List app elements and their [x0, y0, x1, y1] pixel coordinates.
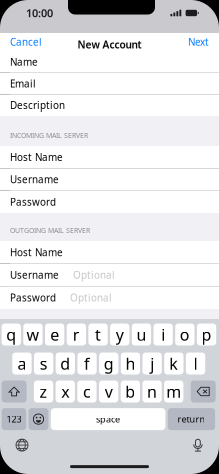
button[interactable]: n	[142, 380, 162, 402]
staticText: Host Name	[10, 246, 63, 259]
staticText: h	[125, 353, 135, 374]
button[interactable]: p	[197, 323, 216, 345]
button[interactable]: r	[67, 323, 86, 345]
staticText: j	[150, 353, 154, 374]
staticText: l	[194, 353, 198, 374]
button[interactable]: Cancel	[0, 33, 48, 51]
staticText: w	[26, 324, 39, 345]
button[interactable]: k	[164, 352, 183, 374]
staticText: INCOMING MAIL SERVER	[10, 131, 88, 140]
staticText: s	[40, 353, 48, 374]
staticText: 10:00	[26, 6, 53, 20]
staticText: f	[84, 353, 90, 374]
staticText: 123	[6, 413, 21, 425]
button[interactable]: b	[121, 380, 140, 402]
staticText: Optional	[70, 291, 112, 304]
button[interactable]: w	[23, 323, 43, 345]
staticText: OUTGOING MAIL SERVER	[10, 226, 90, 235]
staticText: m	[166, 381, 181, 402]
staticText: a	[17, 353, 26, 374]
button[interactable]: space	[51, 408, 165, 430]
button[interactable]: c	[77, 380, 97, 402]
button[interactable]: Dictate	[192, 438, 219, 452]
button[interactable]: Email	[0, 73, 219, 94]
staticText: Name	[10, 55, 38, 68]
button[interactable]: m	[164, 380, 183, 402]
button[interactable]: l	[186, 352, 205, 374]
button[interactable]: Numbers	[2, 408, 26, 430]
button[interactable]: Name	[0, 51, 219, 73]
button[interactable]: q	[2, 323, 21, 345]
button[interactable]: o	[175, 323, 194, 345]
staticText: Password	[10, 195, 56, 208]
staticText: n	[147, 381, 157, 402]
staticText: g	[104, 353, 114, 374]
staticText: b	[125, 381, 135, 402]
staticText: Username	[10, 268, 59, 281]
staticText: Description	[10, 99, 65, 112]
staticText: p	[202, 324, 212, 345]
button[interactable]: Host Name	[0, 146, 219, 168]
button[interactable]: Delete	[191, 380, 216, 402]
staticText: o	[180, 324, 190, 345]
button[interactable]: Password	[0, 286, 219, 309]
button[interactable]: Description	[0, 94, 219, 116]
staticText: e	[50, 324, 59, 345]
staticText: x	[61, 381, 69, 402]
staticText: c	[83, 381, 91, 402]
button[interactable]: y	[110, 323, 129, 345]
button[interactable]: h	[121, 352, 140, 374]
staticText: t	[95, 324, 101, 345]
button[interactable]: s	[34, 352, 53, 374]
staticText: z	[39, 381, 47, 402]
staticText: k	[169, 353, 178, 374]
staticText: Password	[10, 291, 56, 304]
staticText: Host Name	[10, 151, 63, 164]
button[interactable]: Host Name	[0, 241, 219, 264]
button[interactable]: x	[56, 380, 75, 402]
button[interactable]: Change keyboard	[0, 439, 28, 451]
button[interactable]: Username	[0, 168, 219, 191]
button[interactable]: t	[88, 323, 108, 345]
staticText: d	[60, 353, 70, 374]
staticText: q	[6, 324, 16, 345]
staticText: v	[105, 381, 113, 402]
button[interactable]: Shift	[2, 380, 27, 402]
staticText: y	[116, 324, 124, 345]
staticText: i	[161, 324, 165, 345]
staticText: r	[73, 324, 80, 345]
button[interactable]: g	[99, 352, 118, 374]
staticText: New Account	[77, 38, 141, 51]
staticText: Next	[188, 35, 209, 48]
staticText: Username	[10, 173, 59, 186]
button[interactable]: v	[99, 380, 118, 402]
button[interactable]: f	[77, 352, 97, 374]
button[interactable]: i	[153, 323, 173, 345]
button[interactable]: e	[45, 323, 64, 345]
staticText: Optional	[73, 268, 115, 281]
staticText: u	[136, 324, 146, 345]
button[interactable]: z	[34, 380, 53, 402]
button[interactable]: Emoji	[29, 408, 48, 430]
staticText: Email	[10, 77, 36, 90]
button[interactable]: d	[56, 352, 75, 374]
button[interactable]: a	[12, 352, 32, 374]
button[interactable]: Next	[182, 33, 219, 51]
button[interactable]: j	[142, 352, 162, 374]
button[interactable]: Password	[0, 191, 219, 213]
button[interactable]: u	[132, 323, 151, 345]
button[interactable]: Username	[0, 264, 219, 286]
button[interactable]: Return	[168, 408, 215, 430]
staticText: return	[177, 413, 205, 425]
staticText: Cancel	[10, 35, 42, 48]
staticText: space	[96, 413, 120, 425]
